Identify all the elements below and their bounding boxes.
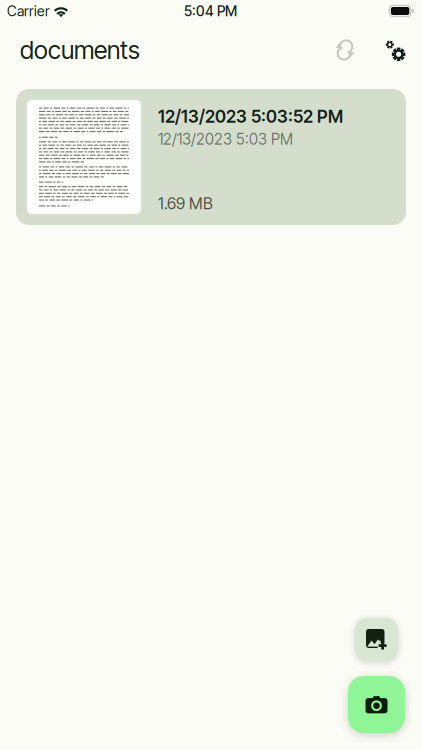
button[interactable]: Settings — [374, 29, 416, 71]
button[interactable]: Refresh — [324, 29, 366, 71]
staticText: 12/13/2023 5:03 PM — [158, 130, 293, 149]
staticText: 12/13/2023 5:03:52 PM — [158, 106, 343, 127]
button[interactable]: 12/13/2023 5:03:52 PM — [16, 89, 406, 225]
button[interactable]: Add photo — [355, 618, 398, 661]
staticText: 1.69 MB — [158, 194, 213, 213]
staticText: 5:04 PM — [184, 2, 237, 19]
staticText: documents — [20, 35, 140, 65]
staticText: Carrier — [7, 2, 50, 19]
button[interactable]: Take photo — [348, 676, 405, 733]
